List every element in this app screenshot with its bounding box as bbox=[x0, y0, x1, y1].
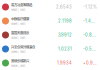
staticText: 2.6543 bbox=[56, 4, 72, 9]
staticText: 中欧医疗健康 bbox=[11, 16, 29, 21]
button[interactable]: 景顺长城新兴 bbox=[0, 56, 100, 70]
staticText: 003095 | 300元 bbox=[11, 22, 26, 26]
staticText: -0.56% bbox=[83, 46, 97, 51]
button[interactable]: 兴全合润分级混合 bbox=[0, 42, 100, 56]
staticText: -1.12% bbox=[83, 4, 97, 9]
button[interactable]: 富国天惠成长 bbox=[0, 28, 100, 42]
staticText: +0.93% bbox=[83, 60, 97, 65]
staticText: 兴全合润分级混合 bbox=[11, 44, 35, 49]
staticText: 163406 | 500元 bbox=[11, 50, 26, 54]
staticText: 易方达蓝筹精选 bbox=[11, 2, 32, 7]
staticText: 1.0231 bbox=[58, 46, 72, 51]
staticText: 2.1198 bbox=[58, 18, 72, 23]
staticText: 1.9934 bbox=[57, 60, 72, 65]
staticText: 富国天惠成长 bbox=[11, 30, 29, 35]
button[interactable]: 中欧医疗健康 bbox=[0, 14, 100, 28]
staticText: -0.87% bbox=[83, 32, 97, 37]
staticText: -1.44% bbox=[83, 18, 97, 23]
staticText: 161005 | 100元 bbox=[11, 36, 26, 40]
staticText: 260108 | 200元 bbox=[11, 64, 26, 68]
staticText: 景顺长城新兴 bbox=[11, 58, 29, 63]
staticText: 005827 | 100元 bbox=[11, 8, 26, 12]
staticText: 3.9912 bbox=[58, 32, 72, 37]
button[interactable]: 易方达蓝筹精选 bbox=[0, 0, 100, 14]
